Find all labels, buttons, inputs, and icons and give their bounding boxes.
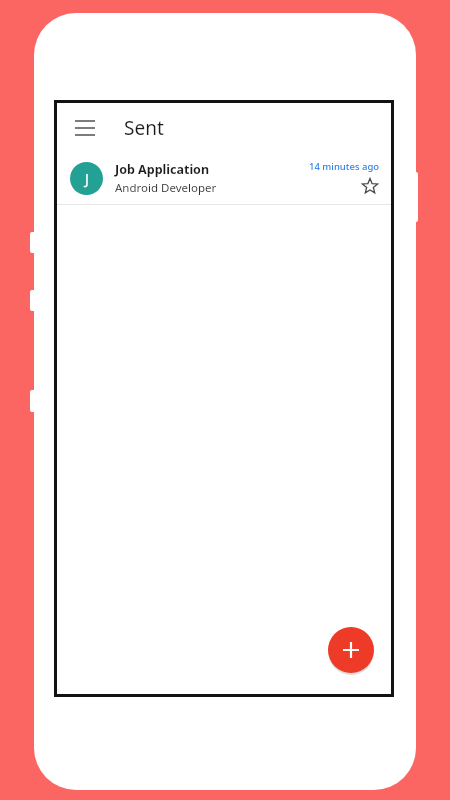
staticText: Android Developer xyxy=(115,180,217,196)
staticText: J xyxy=(85,169,89,188)
button[interactable]: J xyxy=(57,152,391,204)
button[interactable]: Open navigation menu xyxy=(67,110,103,146)
staticText: Sent xyxy=(124,115,164,141)
button[interactable]: Star message xyxy=(360,176,380,196)
staticText: Job Application xyxy=(115,161,210,178)
staticText: 14 minutes ago xyxy=(309,160,380,173)
button[interactable]: Compose new message xyxy=(327,626,375,674)
